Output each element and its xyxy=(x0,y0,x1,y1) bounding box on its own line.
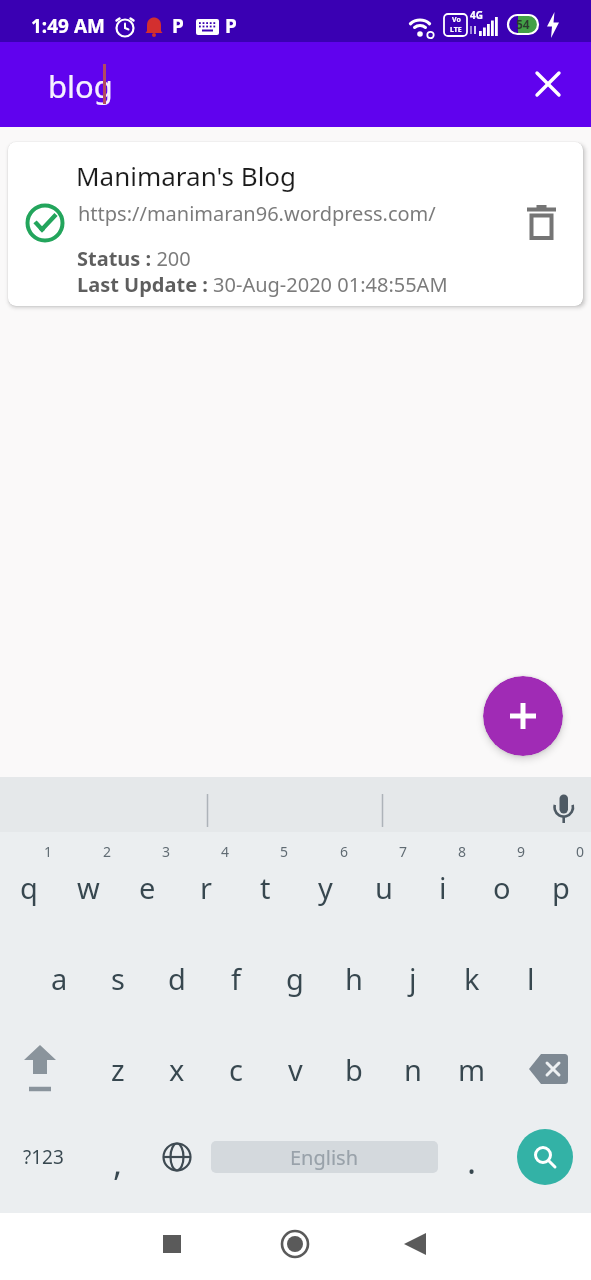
button[interactable]: Manimaran's Blog xyxy=(8,142,583,306)
button[interactable] xyxy=(10,1039,70,1099)
button[interactable]: c xyxy=(207,1040,265,1098)
staticText: P xyxy=(225,13,237,39)
button[interactable]: f xyxy=(207,949,265,1007)
staticText: LTE xyxy=(450,25,462,35)
staticText: o xyxy=(493,868,511,907)
staticText: y xyxy=(318,868,333,907)
staticText: t xyxy=(260,868,271,907)
button[interactable]: y xyxy=(296,858,354,916)
staticText: https://manimaran96.wordpress.com/ xyxy=(78,200,436,227)
staticText: s xyxy=(111,959,125,998)
staticText: Status : 200 xyxy=(77,245,191,272)
button[interactable]: n xyxy=(384,1040,442,1098)
staticText: u xyxy=(375,868,393,907)
staticText: d xyxy=(168,959,186,998)
button[interactable]: m xyxy=(443,1040,501,1098)
button[interactable]: p xyxy=(532,858,590,916)
staticText: i xyxy=(439,868,447,907)
staticText: x xyxy=(169,1050,185,1089)
staticText: l xyxy=(527,959,535,998)
button[interactable]: w xyxy=(59,858,117,916)
staticText: . xyxy=(467,1138,477,1184)
button[interactable]: v xyxy=(266,1040,324,1098)
button[interactable]: e xyxy=(118,858,176,916)
staticText: 2 xyxy=(103,842,112,861)
staticText: 54 xyxy=(516,16,530,32)
button[interactable]: t xyxy=(236,858,294,916)
button[interactable]: s xyxy=(89,949,147,1007)
staticText: 4 xyxy=(221,842,230,861)
button[interactable]: . xyxy=(443,1132,501,1190)
staticText: Manimaran's Blog xyxy=(76,158,297,193)
button[interactable]: l xyxy=(502,949,560,1007)
staticText: n xyxy=(404,1050,422,1089)
staticText: q xyxy=(20,868,38,907)
staticText: , xyxy=(113,1140,123,1186)
button[interactable]: ?123 xyxy=(14,1128,72,1186)
staticText: f xyxy=(231,959,241,998)
button[interactable] xyxy=(540,788,586,830)
button[interactable] xyxy=(392,1221,438,1267)
button[interactable] xyxy=(518,199,566,247)
button[interactable]: o xyxy=(473,858,531,916)
staticText: h xyxy=(345,959,363,998)
staticText: j xyxy=(409,959,417,998)
button[interactable]: h xyxy=(325,949,383,1007)
button[interactable]: English xyxy=(211,1141,438,1173)
staticText: Last Update : 30-Aug-2020 01:48:55AM xyxy=(77,271,448,298)
staticText: 7 xyxy=(399,842,408,861)
staticText: 1 xyxy=(44,842,53,861)
button[interactable] xyxy=(519,1039,579,1099)
staticText: c xyxy=(229,1050,243,1089)
button[interactable]: a xyxy=(30,949,88,1007)
button[interactable] xyxy=(517,1129,573,1185)
staticText: r xyxy=(200,868,212,907)
button[interactable]: g xyxy=(266,949,324,1007)
button[interactable] xyxy=(483,676,563,756)
staticText: 3 xyxy=(162,842,171,861)
staticText: 6 xyxy=(340,842,349,861)
button[interactable]: u xyxy=(355,858,413,916)
button[interactable]: j xyxy=(384,949,442,1007)
staticText: b xyxy=(345,1050,363,1089)
staticText: m xyxy=(458,1050,486,1089)
staticText: English xyxy=(290,1144,359,1171)
button[interactable]: k xyxy=(443,949,501,1007)
staticText: ?123 xyxy=(23,1144,64,1170)
staticText: v xyxy=(288,1050,303,1089)
staticText: 8 xyxy=(458,842,467,861)
staticText: 4G xyxy=(470,8,483,22)
button[interactable]: x xyxy=(148,1040,206,1098)
staticText: k xyxy=(464,959,480,998)
staticText: z xyxy=(111,1050,125,1089)
button[interactable] xyxy=(272,1221,318,1267)
button[interactable]: r xyxy=(177,858,235,916)
staticText: 0 xyxy=(576,842,585,861)
staticText: g xyxy=(286,959,304,998)
staticText: 9 xyxy=(517,842,526,861)
button[interactable] xyxy=(149,1221,195,1267)
button[interactable]: d xyxy=(148,949,206,1007)
button[interactable]: z xyxy=(89,1040,147,1098)
button[interactable]: q xyxy=(0,858,58,916)
button[interactable] xyxy=(147,1127,207,1187)
staticText: p xyxy=(552,868,570,907)
button[interactable]: b xyxy=(325,1040,383,1098)
staticText: a xyxy=(51,959,68,998)
staticText: w xyxy=(77,868,100,907)
staticText: blog xyxy=(48,65,113,107)
staticText: P xyxy=(172,13,184,39)
staticText: 5 xyxy=(280,842,289,861)
button[interactable] xyxy=(524,60,572,108)
button[interactable]: , xyxy=(89,1134,147,1192)
staticText: e xyxy=(139,868,156,907)
staticText: Vo xyxy=(452,15,461,25)
button[interactable]: i xyxy=(414,858,472,916)
staticText: 1:49 AM xyxy=(31,13,105,39)
